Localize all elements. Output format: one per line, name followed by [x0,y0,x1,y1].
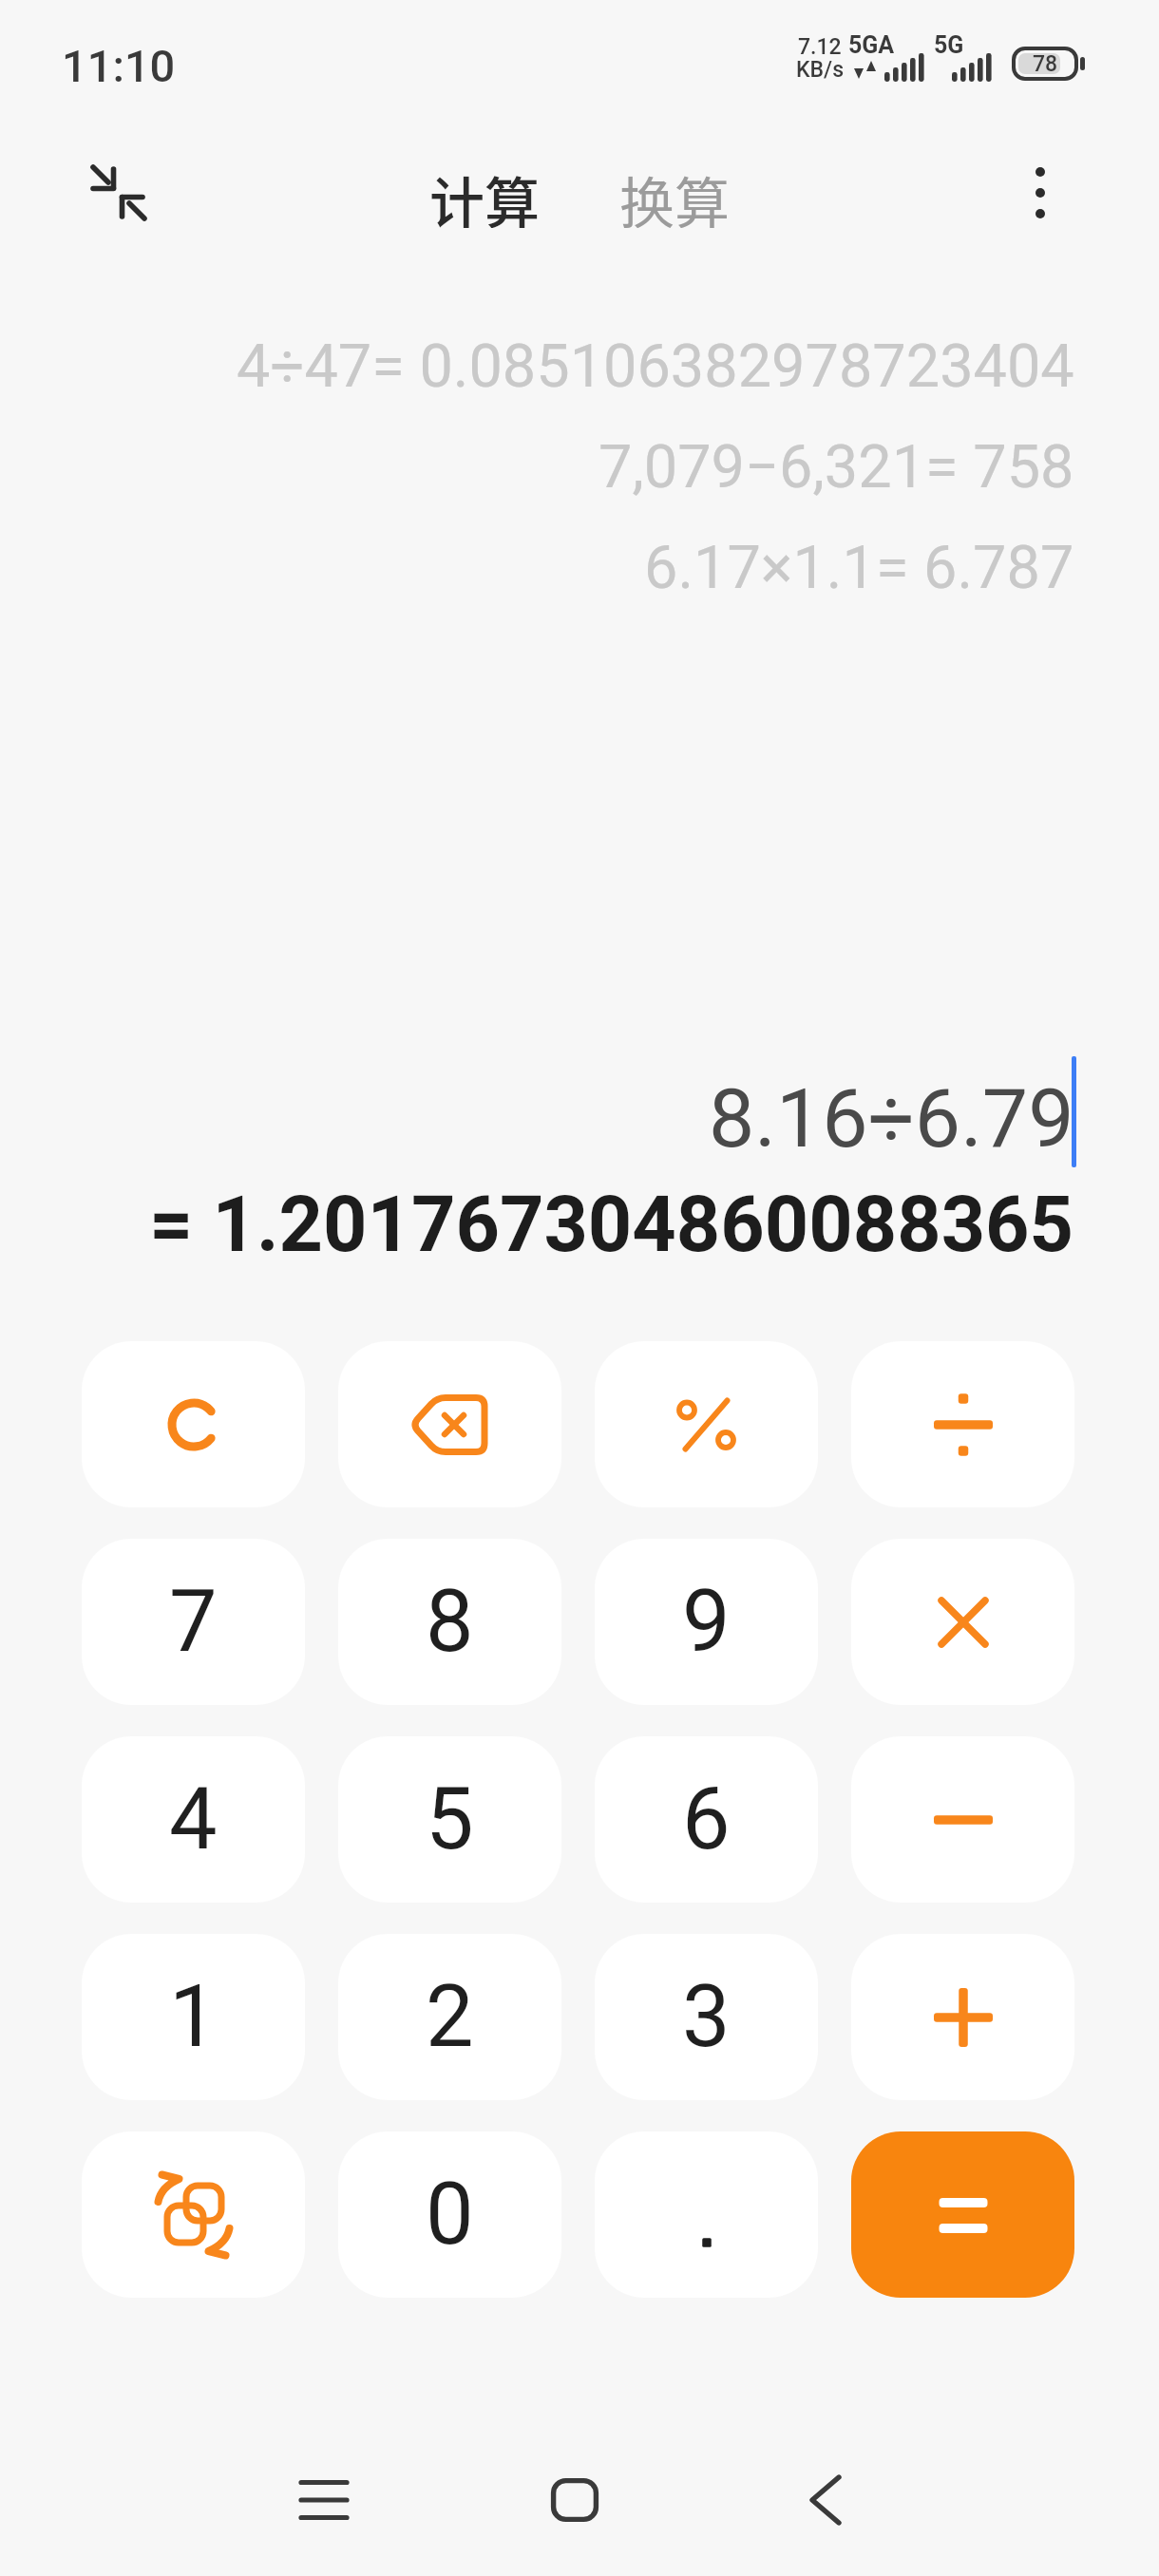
button[interactable]: 6 [595,1736,818,1903]
button[interactable] [851,1341,1074,1507]
staticText: 计算 [429,160,541,228]
staticText: 5G [934,31,964,59]
staticText: 7,079−6,321= 758 [598,432,1074,502]
staticText: 4÷47= 0.085106382978723404 [237,331,1074,402]
staticText: KB/s [796,57,845,82]
button[interactable]: 换算 [608,160,741,228]
button[interactable]: 2 [338,1934,561,2100]
button[interactable] [338,1341,561,1507]
button[interactable]: 7 [82,1539,305,1705]
staticText: 2 [426,1967,474,2067]
button[interactable] [531,2456,618,2544]
button[interactable] [82,1341,305,1507]
button[interactable] [851,2131,1074,2298]
button[interactable] [280,2456,368,2544]
button[interactable]: 计算 [418,160,551,228]
button[interactable] [82,2131,305,2298]
staticText: 换算 [619,160,731,228]
staticText: 9 [682,1572,731,1672]
staticText: = 1.201767304860088365 [149,1180,1074,1270]
staticText: 4 [169,1770,218,1869]
staticText: 78 [1033,51,1058,77]
staticText: 6.17×1.1= 6.787 [644,533,1074,603]
staticText: 1 [169,1967,218,2067]
button[interactable] [851,1539,1074,1705]
staticText: 5GA [848,31,895,59]
staticText: 6 [682,1770,731,1869]
button[interactable]: 4 [82,1736,305,1903]
button[interactable]: 9 [595,1539,818,1705]
staticText: 8 [426,1572,474,1672]
button[interactable] [595,1341,818,1507]
staticText: 7 [169,1572,218,1672]
button[interactable] [782,2456,869,2544]
staticText: 7.12 [798,34,842,59]
button[interactable] [595,2131,818,2298]
button[interactable]: 3 [595,1934,818,2100]
button[interactable] [90,164,147,221]
button[interactable] [1011,164,1070,221]
staticText: 3 [682,1967,731,2067]
button[interactable]: 0 [338,2131,561,2298]
staticText: 8.16÷6.79 [709,1070,1074,1166]
button[interactable] [851,1736,1074,1903]
staticText: 0 [426,2165,474,2264]
staticText: 11:10 [62,40,176,87]
button[interactable]: 1 [82,1934,305,2100]
staticText: 5 [426,1770,474,1869]
button[interactable]: 8 [338,1539,561,1705]
button[interactable] [851,1934,1074,2100]
button[interactable]: 5 [338,1736,561,1903]
